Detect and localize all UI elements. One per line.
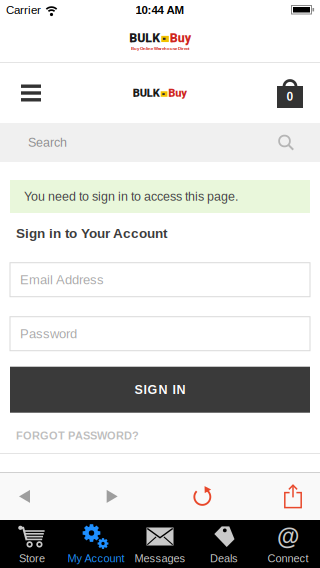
button[interactable]: Menu [14,78,48,108]
staticText: Carrier [6,4,41,16]
button[interactable]: Back [11,481,38,511]
staticText: 0 [286,90,293,103]
button[interactable]: Reload [186,480,218,513]
button[interactable]: SIGN IN [0,367,320,413]
button[interactable]: Deals [192,520,256,568]
button[interactable]: Share [279,479,307,513]
staticText: You need to sign in to access this page. [24,190,238,203]
button[interactable]: Messages [128,520,192,568]
button[interactable]: FORGOT PASSWORD? [16,430,139,442]
button[interactable]: My Account [64,520,128,568]
staticText: Search [28,136,67,149]
staticText: @ [277,524,299,549]
staticText: Email Address [20,273,104,287]
staticText: 10:44 AM [135,4,184,16]
button[interactable]: Password [0,317,320,351]
staticText: FORGOT PASSWORD? [16,430,139,442]
staticText: Password [20,327,77,341]
button[interactable]: @ [256,520,320,568]
button[interactable]: Email Address [0,263,320,297]
staticText: Deals [210,552,238,564]
staticText: Buy Online Warehouse Direct [131,46,189,51]
staticText: Connect [267,552,308,564]
button[interactable]: Forward [99,481,126,511]
staticText: SIGN IN [134,383,185,396]
staticText: Buy [170,31,191,45]
staticText: Store [19,552,45,564]
button[interactable]: Store [0,520,64,568]
staticText: Messages [134,552,185,564]
staticText: My Account [67,552,124,564]
button[interactable]: Search [0,123,320,162]
staticText: BULK [133,87,160,99]
staticText: Sign in to Your Account [16,226,167,241]
staticText: BULK [129,31,160,45]
staticText: Buy [168,87,187,99]
button[interactable]: Cart [274,76,306,110]
